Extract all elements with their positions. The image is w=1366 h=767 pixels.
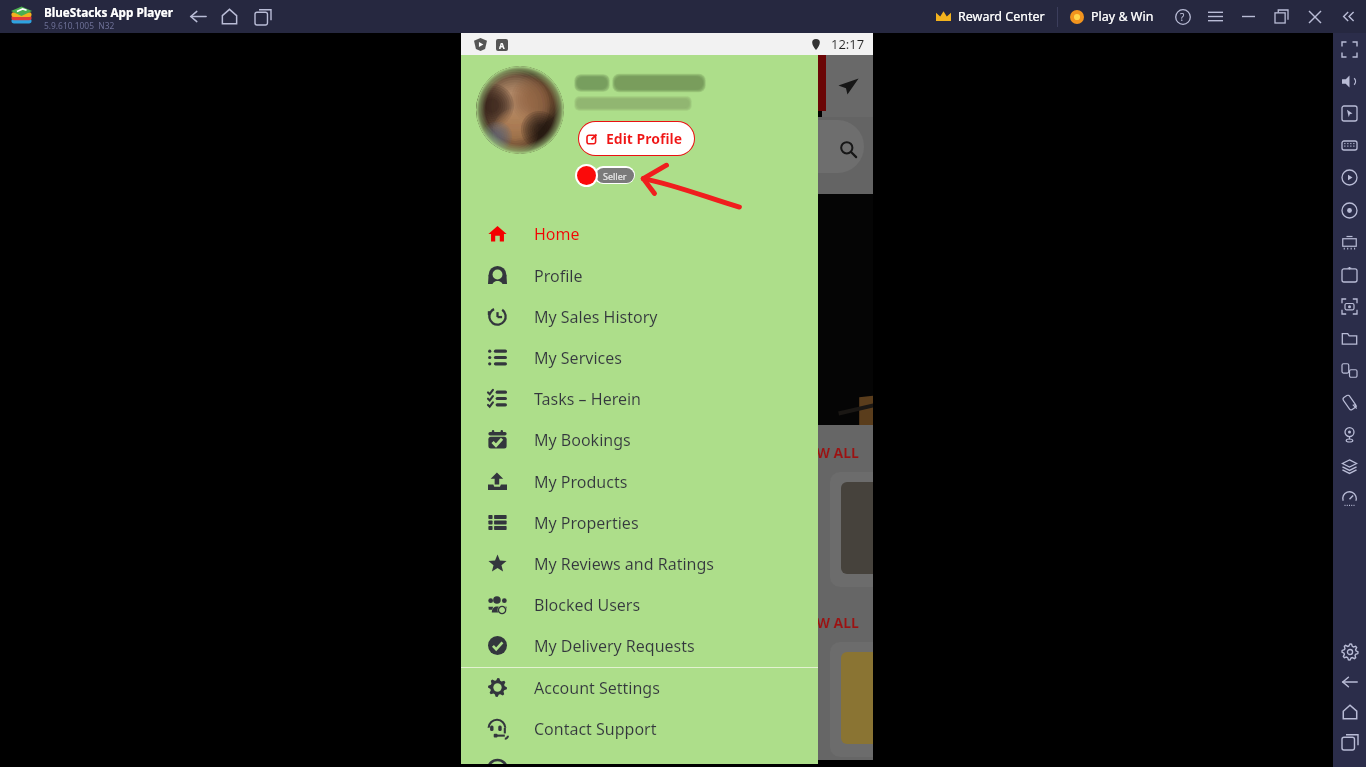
button[interactable]: Back xyxy=(184,2,213,31)
staticText: My Products xyxy=(534,471,628,493)
button[interactable]: Collapse xyxy=(1331,0,1364,33)
button[interactable]: Macro recorder xyxy=(1333,194,1366,226)
button[interactable]: Minimize xyxy=(1232,0,1265,33)
button[interactable]: Volume xyxy=(1333,65,1366,97)
button[interactable]: Home xyxy=(215,2,244,31)
staticText: 12:17 xyxy=(831,35,865,53)
button[interactable]: Profile xyxy=(461,255,818,296)
staticText: Home xyxy=(534,223,580,245)
button[interactable]: My Sales History xyxy=(461,296,818,337)
button[interactable]: Multi instance xyxy=(1333,226,1366,258)
staticText: Reward Center xyxy=(958,8,1045,25)
button[interactable]: Recent apps xyxy=(1333,724,1366,760)
staticText: My Sales History xyxy=(534,306,658,328)
staticText: VIEW ALL xyxy=(794,613,859,632)
staticText: ? xyxy=(1180,10,1185,24)
button[interactable]: Settings xyxy=(1333,634,1366,670)
button[interactable]: Contact Support xyxy=(461,708,818,749)
button[interactable]: Home xyxy=(1333,694,1366,730)
button[interactable]: Install APK xyxy=(1333,258,1366,290)
button[interactable]: Screen record xyxy=(1333,161,1366,193)
button[interactable]: Help xyxy=(1166,0,1199,33)
button[interactable]: Keymapping xyxy=(1333,97,1366,129)
button[interactable]: Back xyxy=(1333,664,1366,700)
button[interactable]: My Delivery Requests xyxy=(461,625,818,666)
staticText: 5.9.610.1005 N32 xyxy=(44,20,115,31)
staticText: Profile xyxy=(534,265,583,287)
button[interactable]: Rotate xyxy=(1333,386,1366,418)
button[interactable]: Edit Profile xyxy=(579,122,694,155)
staticText: BlueStacks App Player xyxy=(44,4,174,20)
button[interactable]: Account Settings xyxy=(461,667,818,708)
staticText: Seller xyxy=(603,170,627,182)
button[interactable] xyxy=(728,120,864,173)
button[interactable]: Home xyxy=(461,213,818,254)
button[interactable]: Recent apps xyxy=(248,2,277,31)
button[interactable] xyxy=(461,749,818,767)
staticText: Contact Support xyxy=(534,718,657,740)
button[interactable]: My Bookings xyxy=(461,419,818,460)
button[interactable]: My Products xyxy=(461,461,818,502)
staticText: My Delivery Requests xyxy=(534,635,695,657)
staticText: Edit Profile xyxy=(606,129,683,148)
button[interactable]: Blocked Users xyxy=(461,584,818,625)
staticText: Play & Win xyxy=(1091,8,1154,25)
button[interactable]: Send message xyxy=(831,69,865,103)
button[interactable]: My Reviews and Ratings xyxy=(461,543,818,584)
staticText: VIEW ALL xyxy=(794,443,859,462)
button[interactable] xyxy=(575,164,598,187)
staticText: A xyxy=(499,40,505,51)
button[interactable]: Multi window xyxy=(1333,354,1366,386)
button[interactable]: Tasks – Herein xyxy=(461,378,818,419)
button[interactable]: Instance manager xyxy=(1333,450,1366,482)
button[interactable]: Seller xyxy=(594,166,635,184)
staticText: My Bookings xyxy=(534,429,631,451)
button[interactable]: My Properties xyxy=(461,502,818,543)
staticText: Tasks – Herein xyxy=(534,388,641,410)
staticText: Account Settings xyxy=(534,677,660,699)
button[interactable]: Menu xyxy=(1199,0,1232,33)
button[interactable]: Close xyxy=(1298,0,1331,33)
staticText: My Properties xyxy=(534,512,639,534)
staticText: My Reviews and Ratings xyxy=(534,553,714,575)
button[interactable]: Performance xyxy=(1333,482,1366,514)
staticText: Blocked Users xyxy=(534,594,641,616)
button[interactable]: Media manager xyxy=(1333,322,1366,354)
button[interactable]: My Services xyxy=(461,337,818,378)
button[interactable]: Screenshot xyxy=(1333,290,1366,322)
staticText: My Services xyxy=(534,347,622,369)
button[interactable]: Maximize xyxy=(1265,0,1298,33)
button[interactable]: Reward Center xyxy=(924,0,1057,33)
button[interactable]: Set location xyxy=(1333,418,1366,450)
button[interactable]: Full screen xyxy=(1333,33,1366,65)
button[interactable]: Play & Win xyxy=(1058,0,1166,33)
button[interactable]: Keyboard xyxy=(1333,129,1366,161)
